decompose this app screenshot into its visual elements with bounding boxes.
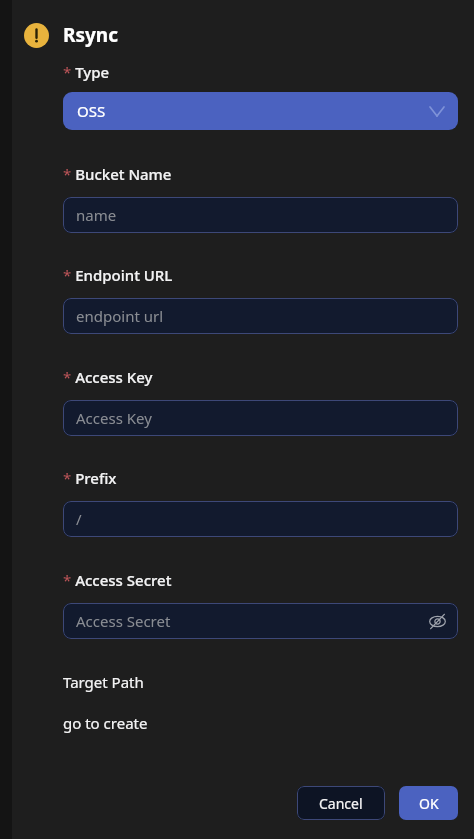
staticText: / [76,509,82,529]
staticText: endpoint url [76,306,164,326]
staticText: OK [419,794,439,813]
staticText: * Prefix [63,468,117,488]
staticText: Access Secret [76,611,171,631]
staticText: Rsync [63,22,119,48]
button[interactable]: Access Key [63,400,458,436]
button[interactable]: Cancel [297,786,385,820]
button[interactable]: / [63,501,458,537]
staticText: * Access Secret [63,570,172,590]
button[interactable]: OSS [63,92,458,130]
button[interactable]: Show password [425,609,449,633]
button[interactable]: Access Secret [63,603,458,639]
staticText: * Access Key [63,367,153,387]
staticText: go to create [63,713,148,733]
button[interactable]: endpoint url [63,298,458,334]
staticText: * Type [63,62,110,82]
staticText: name [76,205,117,225]
staticText: * Bucket Name [63,164,172,184]
staticText: Target Path [63,672,144,692]
staticText: OSS [77,101,106,121]
staticText: Access Key [76,408,152,428]
button[interactable]: name [63,197,458,233]
staticText: Cancel [319,794,363,813]
staticText: * Endpoint URL [63,265,173,285]
button[interactable]: OK [399,786,458,820]
